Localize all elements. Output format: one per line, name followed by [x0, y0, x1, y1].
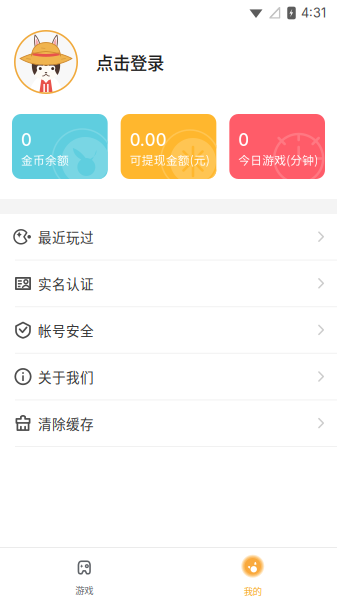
staticText: 金币余额 — [21, 151, 69, 168]
button[interactable]: 0.00 — [121, 114, 216, 179]
staticText: 点击登录 — [96, 49, 164, 75]
staticText: 今日游戏(分钟) — [238, 151, 318, 168]
button[interactable]: 点击登录 — [0, 26, 337, 98]
button[interactable]: 帐号安全 — [0, 307, 337, 354]
staticText: 可提现金额(元) — [130, 151, 210, 168]
button[interactable]: 清除缓存 — [0, 400, 337, 447]
staticText: 最近玩过 — [38, 227, 94, 247]
staticText: 清除缓存 — [38, 413, 94, 433]
button[interactable]: 游戏 — [0, 544, 168, 600]
staticText: 帐号安全 — [38, 320, 94, 340]
button[interactable]: 0 — [12, 114, 108, 179]
staticText: 0.00 — [130, 130, 167, 150]
button[interactable]: 关于我们 — [0, 354, 337, 400]
staticText: 游戏 — [75, 583, 93, 597]
staticText: 我的 — [244, 584, 262, 598]
staticText: 实名认证 — [38, 274, 94, 293]
staticText: 关于我们 — [38, 367, 94, 386]
button[interactable]: 实名认证 — [0, 261, 337, 307]
staticText: 4:31 — [301, 5, 326, 21]
staticText: 0 — [21, 130, 32, 150]
button[interactable]: 0 — [229, 114, 325, 179]
button[interactable]: 我的 — [168, 543, 337, 600]
button[interactable]: 最近玩过 — [0, 214, 337, 261]
staticText: 0 — [238, 130, 249, 150]
